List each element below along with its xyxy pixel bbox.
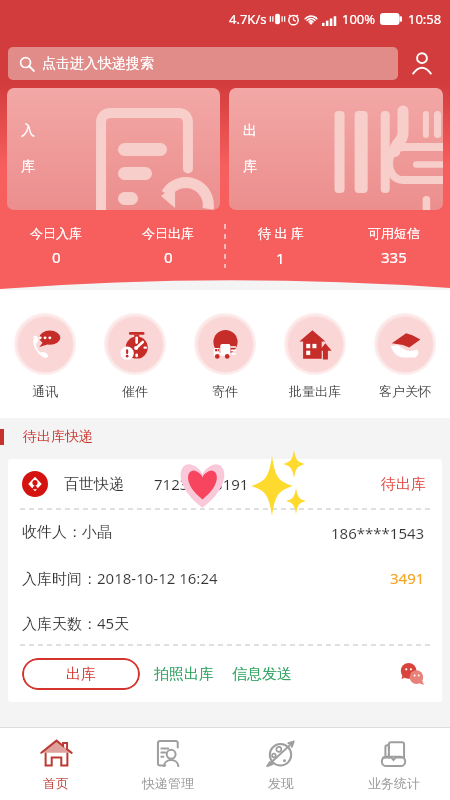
staticText: 收件人：小晶 <box>22 523 112 542</box>
staticText: 0 <box>164 247 173 267</box>
staticText: 业务统计 <box>368 775 420 791</box>
staticText: 待 出 库 <box>258 224 304 242</box>
button[interactable]: 出 <box>229 88 443 210</box>
button[interactable]: 客户关怀 <box>367 293 443 399</box>
staticText: 客户关怀 <box>379 383 431 399</box>
button[interactable]: 催件 <box>97 293 173 399</box>
staticText: 批量出库 <box>289 383 341 399</box>
staticText: 10:58 <box>408 10 442 28</box>
staticText: 71237393191 <box>154 474 249 494</box>
button[interactable]: 待 出 库 <box>224 218 337 274</box>
staticText: 待出库快递 <box>23 428 93 446</box>
staticText: 出库 <box>66 665 96 684</box>
staticText: 通讯 <box>32 383 58 399</box>
staticText: 入 <box>21 122 35 140</box>
button[interactable]: 入 <box>7 88 220 210</box>
staticText: 点击进入快递搜索 <box>42 55 154 73</box>
staticText: 发现 <box>268 775 294 791</box>
button[interactable]: 今日出库 <box>112 218 224 274</box>
button[interactable]: 首页 <box>0 728 112 800</box>
staticText: 首页 <box>43 775 69 791</box>
staticText: 3491 <box>390 568 425 588</box>
button[interactable]: 可用短信 <box>337 218 450 274</box>
staticText: 100% <box>342 10 376 28</box>
button[interactable]: 今日入库 <box>0 218 112 274</box>
staticText: 0 <box>52 247 61 267</box>
staticText: 入库时间：2018-10-12 16:24 <box>22 568 218 588</box>
button[interactable]: WeChat <box>399 661 425 687</box>
button[interactable]: Account <box>398 39 446 87</box>
button[interactable]: 通讯 <box>7 293 83 399</box>
staticText: 寄件 <box>212 383 238 399</box>
staticText: 335 <box>381 247 407 267</box>
staticText: 库 <box>21 158 35 176</box>
button[interactable]: 寄件 <box>187 293 263 399</box>
staticText: 1 <box>276 248 285 268</box>
staticText: 百世快递 <box>64 475 124 494</box>
button[interactable]: 业务统计 <box>337 728 450 800</box>
button[interactable]: 信息发送 <box>232 665 292 684</box>
button[interactable]: 拍照出库 <box>154 665 214 684</box>
staticText: 今日出库 <box>142 225 194 241</box>
button[interactable]: 快递管理 <box>112 728 224 800</box>
staticText: 库 <box>243 158 257 176</box>
staticText: 快递管理 <box>142 775 194 791</box>
button[interactable]: 出库 <box>22 658 140 690</box>
staticText: 催件 <box>122 383 148 399</box>
staticText: 入库天数：45天 <box>22 613 130 633</box>
staticText: 出 <box>243 122 257 140</box>
staticText: 今日入库 <box>30 225 82 241</box>
button[interactable]: 批量出库 <box>277 293 353 399</box>
staticText: 4.7K/s <box>229 10 267 28</box>
staticText: 可用短信 <box>368 225 420 241</box>
button[interactable]: 点击进入快递搜索 <box>8 47 398 80</box>
button[interactable]: 发现 <box>224 728 337 800</box>
staticText: 186****1543 <box>331 523 425 543</box>
staticText: 待出库 <box>381 475 426 494</box>
